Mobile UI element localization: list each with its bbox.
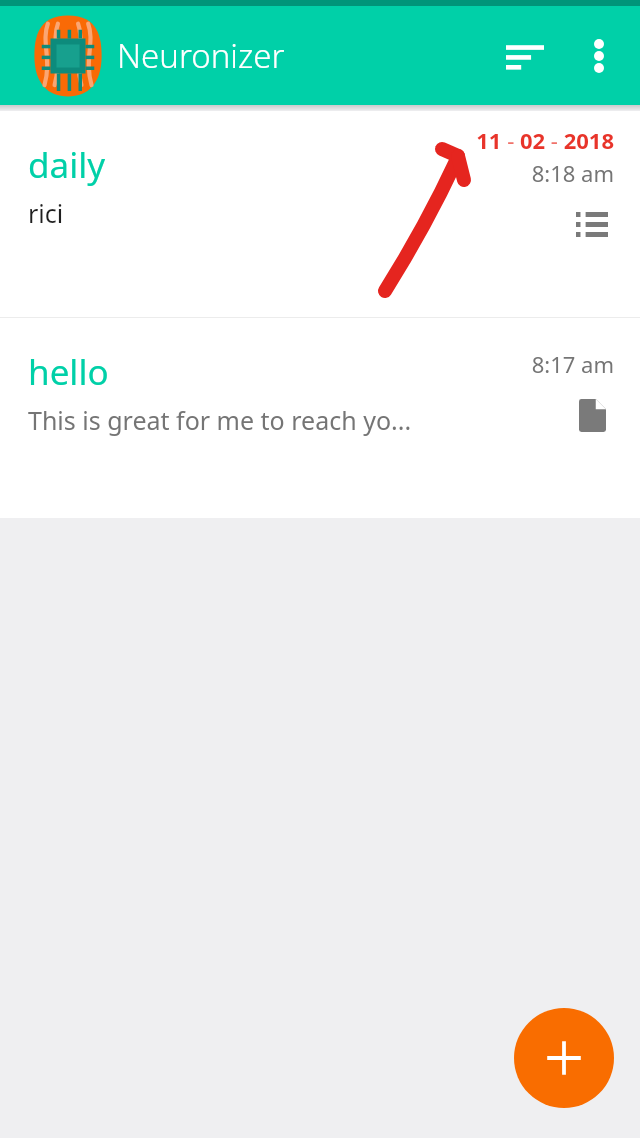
button[interactable]: Text note — [570, 393, 614, 437]
staticText: hello — [28, 348, 109, 396]
staticText: Neuronizer — [117, 33, 285, 78]
staticText: 11 - 02 - 2018 — [476, 125, 614, 155]
staticText: 8:17 am — [531, 349, 614, 379]
button[interactable]: Sort — [488, 19, 562, 93]
staticText: daily — [28, 141, 106, 189]
button[interactable]: More options — [562, 19, 636, 93]
staticText: 8:18 am — [531, 158, 614, 188]
staticText: rici — [28, 196, 64, 230]
button[interactable]: daily — [0, 111, 640, 317]
button[interactable]: hello — [0, 318, 640, 518]
button[interactable]: Add note — [514, 1008, 614, 1108]
staticText: This is great for me to reach yo... — [28, 403, 412, 437]
button[interactable]: Checklist note — [570, 202, 614, 246]
